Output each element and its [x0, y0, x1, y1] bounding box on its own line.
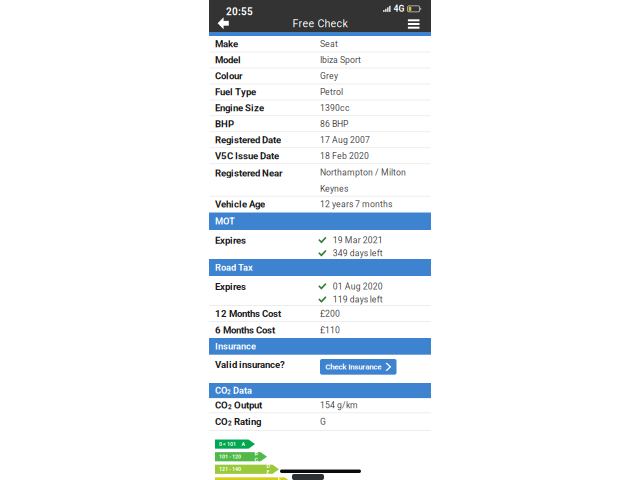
staticText: CO [215, 400, 228, 411]
staticText: Data [231, 385, 252, 396]
staticText: Expires [215, 235, 246, 246]
staticText: £110 [320, 325, 340, 335]
staticText: 86 BHP [320, 119, 348, 129]
staticText: Keynes [320, 184, 348, 194]
staticText: 6 Months Cost [215, 325, 275, 336]
staticText: 101 - 120 [219, 454, 241, 460]
staticText: 2 [228, 403, 232, 411]
staticText: CO [215, 416, 228, 427]
staticText: Registered Near [215, 167, 283, 179]
staticText: Colour [215, 70, 243, 82]
staticText: 12 Months Cost [215, 308, 281, 319]
staticText: C [254, 457, 257, 463]
staticText: BHP [215, 118, 234, 130]
staticText: G [320, 417, 326, 427]
staticText: MOT [215, 216, 235, 227]
staticText: 01 Aug 2020 [333, 281, 383, 291]
staticText: Output [232, 400, 262, 411]
staticText: 20:55 [226, 6, 253, 18]
staticText: 17 Aug 2007 [320, 135, 370, 145]
staticText: 18 Feb 2020 [320, 151, 369, 161]
staticText: 2 [227, 388, 231, 396]
staticText: Model [215, 54, 241, 66]
staticText: Vehicle Age [215, 199, 265, 210]
staticText: Grey [320, 71, 338, 81]
staticText: Expires [215, 281, 246, 292]
staticText: 4G [394, 4, 405, 14]
staticText: 2 [228, 420, 232, 427]
staticText: Valid insurance? [215, 359, 285, 370]
staticText: Free Check [292, 17, 347, 30]
staticText: 0 < 101 [219, 441, 236, 447]
staticText: 121 - 140 [219, 466, 241, 472]
button[interactable]: Check Insurance [320, 355, 396, 375]
staticText: CO [215, 385, 227, 396]
staticText: Rating [232, 416, 261, 427]
staticText: Seat [320, 39, 338, 49]
staticText: B [254, 450, 257, 457]
staticText: Check Insurance [325, 362, 381, 372]
button[interactable]: Back [209, 15, 235, 33]
staticText: 1390cc [320, 103, 350, 113]
staticText: £200 [320, 309, 340, 319]
staticText: V5C Issue Date [215, 150, 279, 162]
staticText: 12 years 7 months [320, 199, 392, 209]
staticText: Insurance [215, 341, 256, 352]
staticText: 154 g/km [320, 400, 358, 410]
button[interactable]: Menu [402, 16, 431, 32]
staticText: 19 Mar 2021 [333, 235, 383, 245]
staticText: D [266, 463, 269, 469]
staticText: Registered Date [215, 134, 281, 146]
staticText: 349 days left [333, 248, 383, 258]
staticText: 119 days left [333, 294, 383, 305]
staticText: Make [215, 38, 238, 50]
staticText: Fuel Type [215, 86, 256, 98]
staticText: Northampton / Milton [320, 167, 406, 178]
staticText: F [278, 476, 281, 480]
staticText: Ibiza Sport [320, 55, 361, 65]
staticText: Road Tax [215, 262, 253, 273]
staticText: Engine Size [215, 102, 264, 114]
staticText: E [266, 469, 269, 476]
staticText: A [241, 441, 245, 447]
staticText: Petrol [320, 87, 343, 97]
